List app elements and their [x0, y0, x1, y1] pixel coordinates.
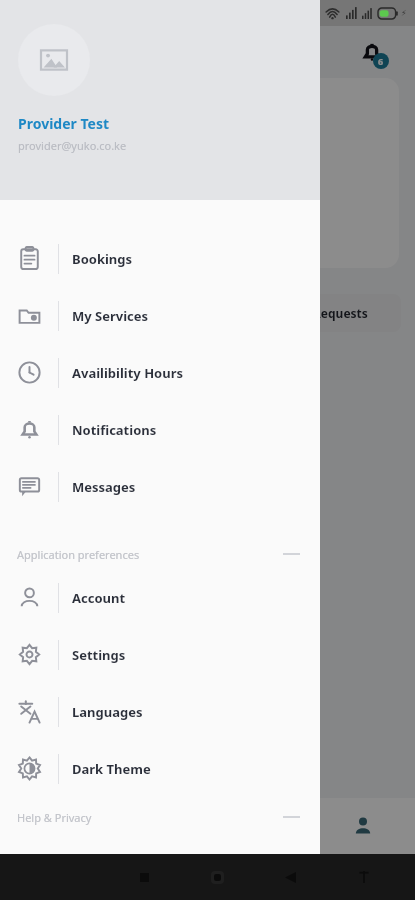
staticText: Application preferences — [17, 547, 140, 562]
button[interactable]: Availibility Hours — [0, 344, 320, 401]
staticText: Help & Privacy — [17, 810, 92, 825]
button[interactable]: Notifications — [0, 401, 320, 458]
button[interactable]: 0 — [16, 78, 399, 268]
button[interactable]: Messages — [0, 458, 320, 515]
button[interactable]: Notifications — [355, 35, 389, 69]
button[interactable]: Requests — [279, 294, 401, 332]
staticText: My Services — [72, 307, 149, 325]
button[interactable]: Tab 2 — [207, 798, 311, 854]
staticText: Messages — [72, 478, 136, 496]
staticText: 6 — [378, 55, 384, 67]
staticText: Notifications — [72, 421, 157, 439]
button[interactable]: Dark Theme — [0, 740, 320, 797]
button[interactable]: Languages — [0, 683, 320, 740]
staticText: provider@yuko.co.ke — [18, 138, 127, 153]
staticText: Today — [58, 305, 94, 321]
button[interactable]: Application preferences — [0, 539, 320, 569]
staticText: Availibility Hours — [72, 364, 184, 382]
button[interactable]: Profile photo — [18, 24, 90, 96]
staticText: Requests — [313, 305, 368, 321]
button[interactable]: Settings — [0, 626, 320, 683]
staticText: Settings — [72, 646, 126, 664]
staticText: Languages — [72, 703, 143, 721]
button[interactable]: Help & Privacy — [0, 802, 320, 832]
staticText: Provider Test — [18, 114, 109, 133]
staticText: Dark Theme — [72, 760, 151, 778]
staticText: Bookings — [72, 250, 133, 268]
staticText: ⚡ — [401, 9, 407, 18]
button[interactable]: My Services — [0, 287, 320, 344]
button[interactable]: Account — [0, 569, 320, 626]
button[interactable]: Tab 3 — [311, 798, 415, 854]
button[interactable]: Today — [14, 294, 137, 332]
button[interactable]: Bookings — [0, 230, 320, 287]
staticText: Account — [72, 589, 126, 607]
button[interactable]: Tab 0 — [0, 798, 103, 854]
